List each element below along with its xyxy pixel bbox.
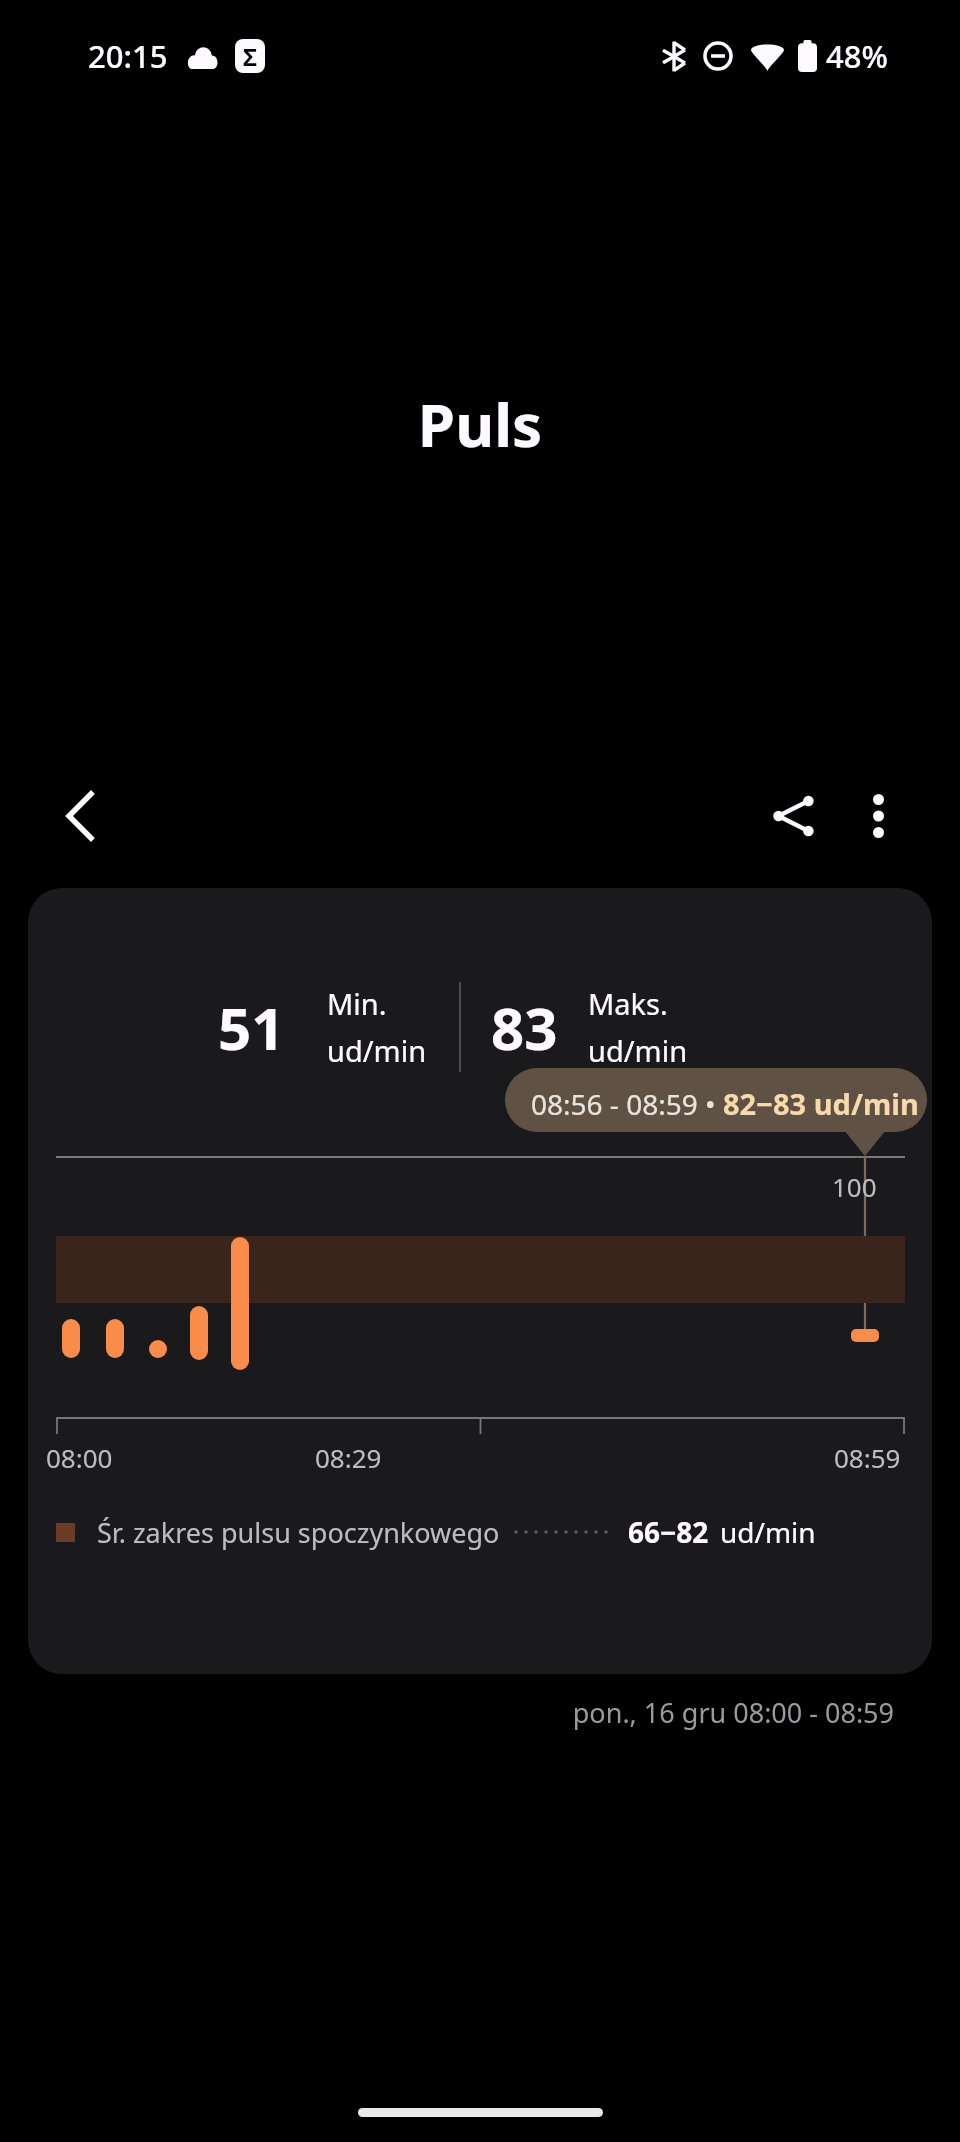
staticText: 08:56 - 08:59 • <box>531 1085 723 1123</box>
staticText: 48% <box>826 35 888 77</box>
staticText: 66−82 <box>628 1513 709 1551</box>
staticText: Σ <box>243 40 257 73</box>
staticText: 08:00 <box>46 1440 113 1475</box>
staticText: 100 <box>832 1169 877 1204</box>
staticText: 08:59 <box>834 1440 901 1475</box>
staticText: Puls <box>0 383 960 465</box>
button[interactable]: More options <box>840 778 916 854</box>
staticText: ud/min <box>720 1513 816 1551</box>
staticText: Min. <box>327 984 387 1023</box>
staticText: 20:15 <box>88 35 168 77</box>
staticText: 08:29 <box>315 1440 382 1475</box>
staticText: Maks. <box>588 984 668 1023</box>
staticText: 51 <box>218 988 285 1067</box>
button[interactable]: Back <box>40 776 120 856</box>
staticText: Śr. zakres pulsu spoczynkowego <box>97 1514 500 1551</box>
button[interactable]: Share <box>752 775 834 857</box>
staticText: ud/min <box>327 1031 427 1070</box>
staticText: pon., 16 gru 08:00 - 08:59 <box>0 1694 894 1731</box>
staticText: 83 <box>491 988 558 1067</box>
button[interactable]: 51 <box>28 888 932 1674</box>
staticText: ud/min <box>588 1031 688 1070</box>
staticText: 82−83 ud/min <box>723 1084 919 1123</box>
